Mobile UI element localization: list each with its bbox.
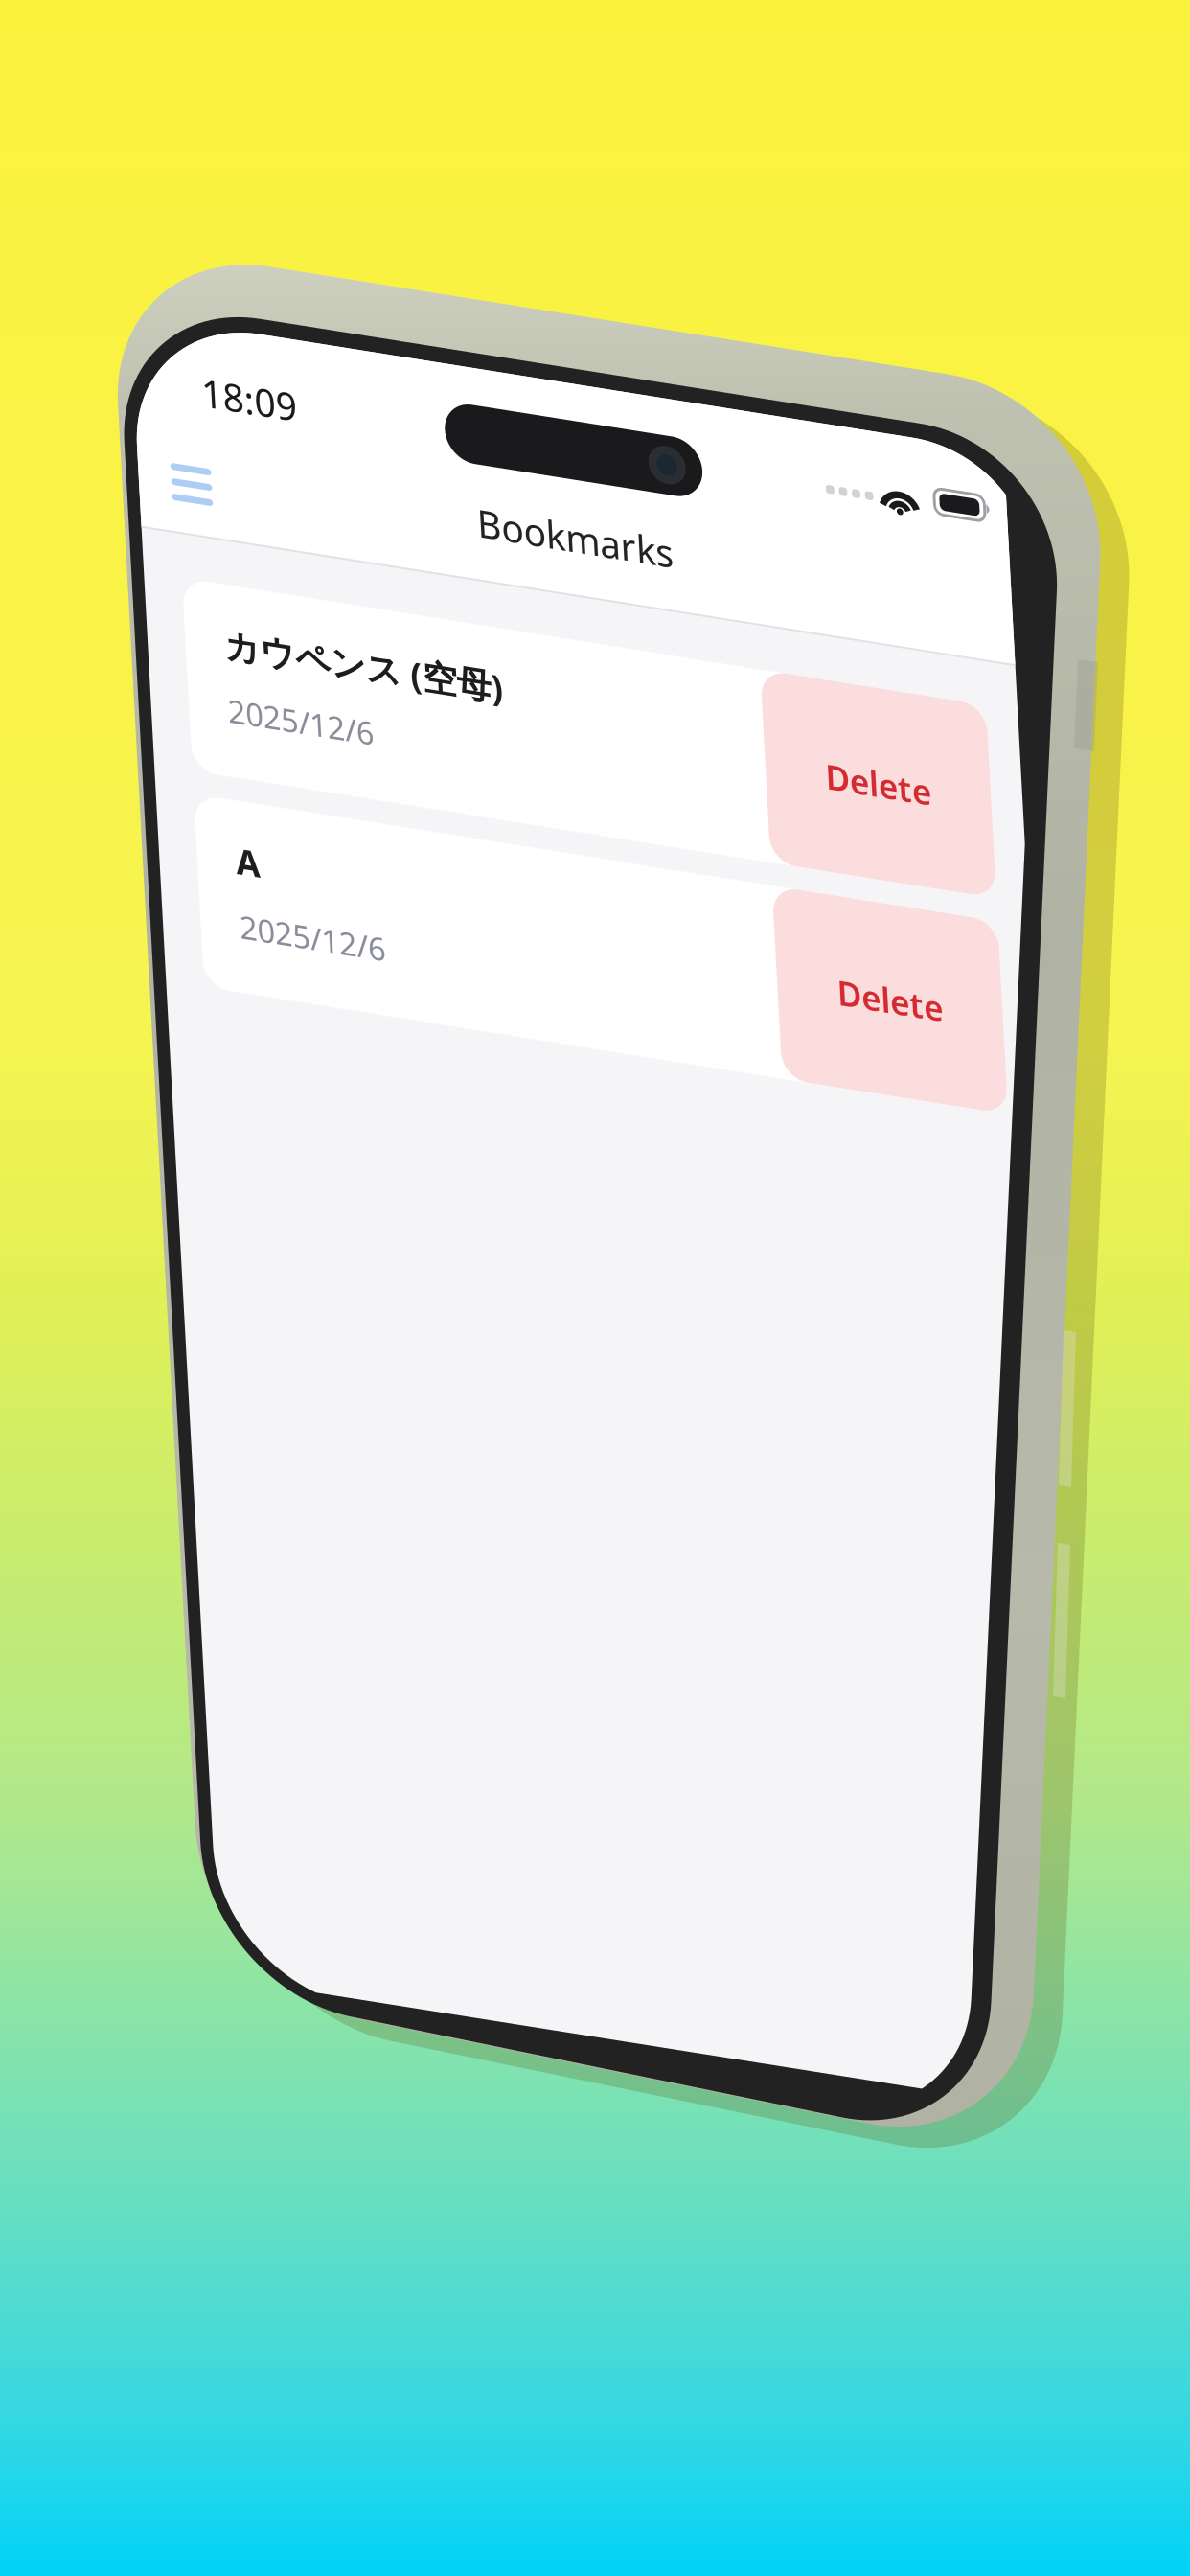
button[interactable]: A [39, 475, 868, 669]
button[interactable]: Delete [635, 475, 868, 669]
staticText: カウペンス (空母) [80, 295, 367, 343]
staticText: 2025/12/6 [80, 364, 230, 406]
button[interactable]: Delete [635, 259, 868, 452]
staticText: Delete [697, 333, 806, 378]
button[interactable]: カウペンス (空母) [39, 259, 868, 452]
staticText: 2025/12/6 [80, 580, 230, 623]
